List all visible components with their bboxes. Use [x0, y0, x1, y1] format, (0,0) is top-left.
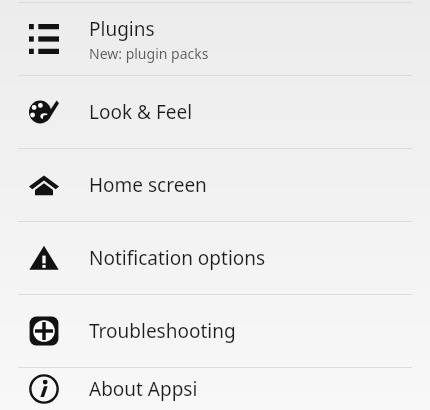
other: Plugins — [20, 15, 68, 63]
button[interactable]: Troubleshooting — [0, 295, 430, 367]
other: About Appsi — [20, 368, 68, 410]
button[interactable]: Home screen — [0, 149, 430, 221]
staticText: Look & Feel — [89, 99, 193, 125]
other: Notification options — [20, 234, 68, 282]
button[interactable]: Look and Feel — [0, 76, 430, 148]
other: Home screen — [20, 161, 68, 209]
other: Troubleshooting — [20, 307, 68, 355]
staticText: Troubleshooting — [89, 318, 236, 344]
staticText: Home screen — [89, 172, 207, 198]
staticText: Plugins — [89, 16, 155, 42]
staticText: Notification options — [89, 245, 266, 271]
other: Look and Feel — [20, 88, 68, 136]
button[interactable]: Notification options — [0, 222, 430, 294]
staticText: New: plugin packs — [89, 44, 209, 63]
button[interactable]: Plugins — [0, 3, 430, 75]
staticText: About Appsi — [89, 376, 198, 402]
button[interactable]: About Appsi — [0, 368, 430, 410]
